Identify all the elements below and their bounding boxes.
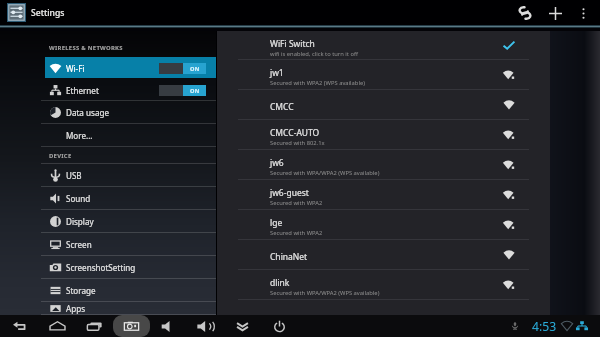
button[interactable]: jw1 [217, 60, 550, 90]
button[interactable]: jw6 [217, 150, 550, 180]
button[interactable]: Settings app icon [7, 3, 26, 22]
button[interactable]: Sound [0, 187, 216, 210]
staticText: Secured with WPA/WPA2 (WPS available) [270, 289, 380, 297]
staticText: ScreenshotSetting [66, 262, 136, 273]
staticText: Secured with WPA/WPA2 (WPS available) [270, 169, 380, 177]
button[interactable]: Volume down [150, 315, 187, 337]
button[interactable]: ScreenshotSetting [0, 256, 216, 279]
staticText: lge [270, 217, 283, 229]
button[interactable]: Power [261, 315, 298, 337]
button[interactable]: Apps [0, 302, 216, 315]
button[interactable]: Volume up [187, 315, 224, 337]
button[interactable]: Storage [0, 279, 216, 302]
button[interactable]: Display [0, 210, 216, 233]
staticText: ON [190, 65, 200, 73]
button[interactable]: Home [39, 315, 76, 337]
button[interactable]: Add network [543, 1, 567, 25]
staticText: CMCC [270, 101, 294, 113]
button[interactable]: ON [159, 63, 206, 74]
button[interactable]: USB [0, 164, 216, 187]
staticText: Data usage [66, 107, 109, 118]
button[interactable]: WiFi Switch [217, 31, 550, 60]
button[interactable]: Data usage [0, 101, 216, 124]
staticText: Display [66, 216, 94, 227]
button[interactable]: Wi-Fi [0, 57, 216, 79]
button[interactable]: ON [159, 85, 206, 96]
button[interactable]: lge [217, 210, 550, 240]
staticText: Wi-Fi [66, 63, 85, 74]
staticText: More... [66, 130, 93, 141]
button[interactable]: dlink [217, 270, 550, 300]
button[interactable]: CMCC [217, 90, 550, 120]
staticText: 4:53 [532, 318, 557, 335]
staticText: Secured with WPA2 [270, 199, 323, 207]
button[interactable]: Recent apps [76, 315, 113, 337]
staticText: Ethernet [66, 85, 99, 96]
button[interactable]: Back [2, 315, 39, 337]
staticText: Settings [31, 7, 65, 19]
staticText: CMCC-AUTO [270, 127, 320, 139]
staticText: ON [190, 87, 200, 95]
button[interactable]: Scan [513, 1, 537, 25]
staticText: jw6 [270, 157, 284, 169]
staticText: DEVICE [49, 152, 72, 160]
button[interactable]: More options [571, 1, 595, 25]
staticText: Apps [66, 303, 86, 314]
staticText: Screen [66, 239, 92, 250]
button[interactable]: jw6-guest [217, 180, 550, 210]
staticText: ChinaNet [270, 251, 308, 263]
button[interactable]: Screen [0, 233, 216, 256]
button[interactable]: Screenshot [113, 315, 150, 337]
staticText: wifi is enabled, click to turn it off [270, 50, 358, 58]
staticText: dlink [270, 277, 290, 289]
button[interactable]: Ethernet [0, 79, 216, 101]
staticText: Secured with WPA2 [270, 229, 323, 237]
staticText: Secured with WPA2 (WPS available) [270, 79, 365, 87]
staticText: jw6-guest [270, 187, 309, 199]
button[interactable]: ChinaNet [217, 240, 550, 270]
staticText: jw1 [270, 67, 284, 79]
staticText: Sound [66, 193, 91, 204]
staticText: WiFi Switch [270, 38, 315, 50]
staticText: USB [66, 170, 82, 181]
button[interactable]: Hide navigation bar [224, 315, 261, 337]
staticText: Storage [66, 285, 96, 296]
staticText: WIRELESS & NETWORKS [49, 44, 123, 52]
staticText: Secured with 802.1x [270, 139, 325, 147]
button[interactable]: More... [0, 124, 216, 147]
button[interactable]: CMCC-AUTO [217, 120, 550, 150]
